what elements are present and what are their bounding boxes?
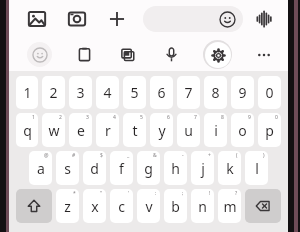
- staticText: 4: [113, 114, 116, 121]
- staticText: 6: [167, 114, 170, 121]
- staticText: n: [198, 197, 207, 216]
- button[interactable]: e: [69, 113, 92, 147]
- staticText: i: [214, 121, 218, 140]
- staticText: k: [226, 159, 234, 178]
- button[interactable]: Stickers: [116, 43, 140, 67]
- staticText: +: [208, 152, 211, 159]
- button[interactable]: Backspace: [245, 189, 281, 223]
- staticText: 4: [103, 83, 112, 102]
- staticText: y: [158, 121, 166, 140]
- button[interactable]: 7: [177, 76, 200, 109]
- staticText: r: [105, 121, 111, 140]
- staticText: g: [144, 159, 153, 178]
- button[interactable]: 6: [150, 76, 173, 109]
- button[interactable]: Gallery: [23, 5, 51, 33]
- staticText: c: [118, 197, 125, 216]
- button[interactable]: d: [83, 151, 106, 185]
- button[interactable]: Add: [103, 5, 131, 33]
- staticText: ": [100, 190, 103, 197]
- staticText: h: [171, 159, 180, 178]
- button[interactable]: a: [29, 151, 52, 185]
- button[interactable]: j: [191, 151, 214, 185]
- button[interactable]: Camera: [63, 5, 91, 33]
- staticText: j: [201, 159, 205, 178]
- button[interactable]: s: [56, 151, 79, 185]
- staticText: d: [90, 159, 99, 178]
- button[interactable]: z: [56, 189, 79, 223]
- staticText: e: [77, 121, 85, 140]
- button[interactable]: c: [110, 189, 133, 223]
- button[interactable]: b: [164, 189, 187, 223]
- button[interactable]: m: [218, 189, 241, 223]
- staticText: 3: [76, 83, 85, 102]
- staticText: 5: [140, 114, 143, 121]
- button[interactable]: q: [16, 113, 38, 147]
- button[interactable]: More options: [252, 43, 276, 67]
- button[interactable]: g: [137, 151, 160, 185]
- staticText: #: [72, 152, 76, 159]
- button[interactable]: t: [123, 113, 146, 147]
- staticText: $: [100, 152, 103, 159]
- button[interactable]: y: [150, 113, 173, 147]
- staticText: m: [223, 197, 237, 216]
- staticText: l: [255, 159, 259, 178]
- button[interactable]: p: [258, 113, 281, 147]
- button[interactable]: Clipboard: [73, 43, 96, 66]
- staticText: 0: [275, 114, 278, 121]
- button[interactable]: k: [218, 151, 241, 185]
- button[interactable]: v: [137, 189, 160, 223]
- staticText: 2: [59, 114, 62, 121]
- staticText: 2: [49, 83, 58, 102]
- staticText: b: [171, 197, 180, 216]
- button[interactable]: 0: [258, 76, 281, 109]
- button[interactable]: [143, 6, 243, 32]
- button[interactable]: i: [204, 113, 227, 147]
- staticText: v: [145, 197, 153, 216]
- staticText: 1: [32, 114, 35, 121]
- staticText: a: [37, 159, 45, 178]
- staticText: w: [48, 121, 60, 140]
- staticText: t: [132, 121, 138, 140]
- button[interactable]: 2: [42, 76, 65, 109]
- staticText: q: [23, 121, 32, 140]
- staticText: 7: [184, 83, 193, 102]
- staticText: 6: [157, 83, 166, 102]
- button[interactable]: r: [96, 113, 119, 147]
- button[interactable]: 9: [231, 76, 254, 109]
- button[interactable]: Voice typing: [160, 43, 183, 66]
- staticText: z: [64, 197, 71, 216]
- button[interactable]: 5: [123, 76, 146, 109]
- staticText: x: [91, 197, 99, 216]
- button[interactable]: 1: [16, 76, 38, 109]
- staticText: @: [44, 152, 49, 159]
- staticText: 9: [238, 83, 247, 102]
- button[interactable]: Emoji: [27, 42, 52, 67]
- button[interactable]: l: [245, 151, 268, 185]
- staticText: (: [236, 152, 238, 159]
- button[interactable]: h: [164, 151, 187, 185]
- staticText: ): [263, 152, 265, 159]
- staticText: _: [127, 152, 130, 159]
- staticText: 8: [211, 83, 220, 102]
- button[interactable]: Settings: [205, 42, 231, 68]
- button[interactable]: f: [110, 151, 133, 185]
- button[interactable]: 8: [204, 76, 227, 109]
- button[interactable]: Shift: [16, 189, 52, 223]
- button[interactable]: 3: [69, 76, 92, 109]
- staticText: ;: [182, 190, 184, 197]
- staticText: 1: [23, 83, 32, 102]
- staticText: ': [128, 190, 130, 197]
- staticText: 7: [194, 114, 197, 121]
- button[interactable]: o: [231, 113, 254, 147]
- staticText: 9: [248, 114, 251, 121]
- button[interactable]: u: [177, 113, 200, 147]
- staticText: 0: [265, 83, 274, 102]
- staticText: 8: [221, 114, 224, 121]
- staticText: &: [153, 152, 157, 159]
- button[interactable]: Voice input: [252, 7, 276, 31]
- button[interactable]: n: [191, 189, 214, 223]
- button[interactable]: w: [42, 113, 65, 147]
- button[interactable]: x: [83, 189, 106, 223]
- staticText: s: [64, 159, 71, 178]
- button[interactable]: 4: [96, 76, 119, 109]
